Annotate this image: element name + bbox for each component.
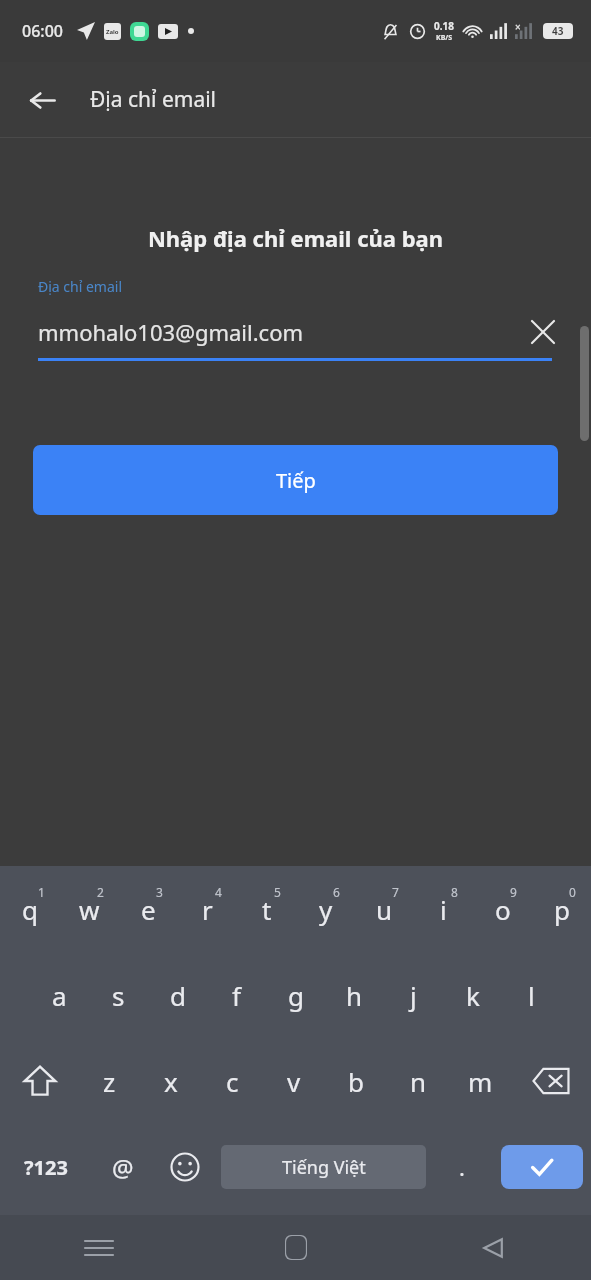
- staticText: 0.18: [434, 19, 454, 33]
- staticText: u: [376, 892, 393, 927]
- button[interactable]: Back: [18, 76, 66, 124]
- button[interactable]: 2: [60, 866, 119, 952]
- staticText: l: [528, 978, 535, 1013]
- button[interactable]: Back: [394, 1215, 591, 1280]
- staticText: m: [468, 1064, 493, 1099]
- button[interactable]: ?123: [0, 1124, 92, 1210]
- button[interactable]: n: [387, 1038, 449, 1124]
- button[interactable]: a: [30, 952, 89, 1038]
- staticText: 3: [156, 884, 163, 900]
- staticText: n: [410, 1064, 427, 1099]
- staticText: a: [52, 978, 67, 1013]
- staticText: Địa chỉ email: [90, 85, 217, 114]
- button[interactable]: 3: [119, 866, 178, 952]
- button[interactable]: Emoji: [154, 1124, 216, 1210]
- button[interactable]: f: [207, 952, 266, 1038]
- staticText: @: [112, 1151, 134, 1184]
- button[interactable]: Enter: [501, 1145, 583, 1189]
- staticText: h: [346, 978, 363, 1013]
- staticText: 0: [569, 884, 576, 900]
- staticText: 4: [215, 884, 222, 900]
- button[interactable]: Recent apps: [0, 1215, 197, 1280]
- button[interactable]: Shift: [0, 1038, 79, 1124]
- staticText: q: [22, 892, 38, 927]
- staticText: z: [103, 1064, 116, 1099]
- staticText: ?123: [24, 1154, 68, 1181]
- staticText: 2: [97, 884, 104, 900]
- button[interactable]: x: [140, 1038, 201, 1124]
- button[interactable]: Tiếng Việt: [221, 1145, 426, 1189]
- button[interactable]: 9: [473, 866, 532, 952]
- staticText: 7: [392, 884, 399, 900]
- staticText: w: [79, 892, 100, 927]
- staticText: f: [232, 978, 241, 1013]
- staticText: Tiếp: [276, 467, 316, 494]
- staticText: c: [226, 1064, 239, 1099]
- button[interactable]: Đăng ký bằng số di động: [165, 1228, 426, 1266]
- staticText: y: [319, 892, 333, 927]
- staticText: 1: [38, 884, 45, 900]
- button[interactable]: k: [443, 952, 502, 1038]
- staticText: 9: [510, 884, 517, 900]
- staticText: b: [348, 1064, 364, 1099]
- staticText: t: [262, 892, 272, 927]
- staticText: s: [112, 978, 125, 1013]
- staticText: KB/S: [436, 33, 453, 43]
- staticText: i: [440, 892, 447, 927]
- staticText: 6: [333, 884, 340, 900]
- button[interactable]: s: [89, 952, 148, 1038]
- staticText: ×: [515, 20, 521, 34]
- staticText: .: [459, 1152, 465, 1182]
- staticText: Địa chỉ email: [38, 277, 123, 296]
- staticText: Zalo: [106, 28, 119, 36]
- button[interactable]: 8: [414, 866, 473, 952]
- button[interactable]: Home: [197, 1215, 394, 1280]
- button[interactable]: c: [201, 1038, 263, 1124]
- button[interactable]: h: [325, 952, 384, 1038]
- button[interactable]: Tiếp: [33, 445, 558, 515]
- staticText: e: [141, 892, 156, 927]
- button[interactable]: l: [502, 952, 561, 1038]
- button[interactable]: v: [263, 1038, 325, 1124]
- button[interactable]: d: [148, 952, 207, 1038]
- staticText: mmohalo103@gmail.com: [38, 317, 304, 347]
- button[interactable]: Clear text: [523, 312, 563, 352]
- staticText: x: [164, 1064, 178, 1099]
- staticText: r: [202, 892, 213, 927]
- staticText: Đăng ký bằng số di động: [179, 1234, 412, 1260]
- button[interactable]: Delete: [511, 1038, 591, 1124]
- button[interactable]: .: [431, 1124, 493, 1210]
- staticText: Nhập địa chỉ email của bạn: [0, 223, 591, 253]
- staticText: v: [287, 1064, 301, 1099]
- staticText: g: [288, 978, 304, 1013]
- staticText: 5: [274, 884, 281, 900]
- button[interactable]: @: [92, 1124, 154, 1210]
- button[interactable]: z: [79, 1038, 140, 1124]
- staticText: p: [554, 892, 570, 927]
- button[interactable]: 4: [178, 866, 237, 952]
- staticText: k: [466, 978, 480, 1013]
- button[interactable]: j: [384, 952, 443, 1038]
- button[interactable]: b: [325, 1038, 387, 1124]
- button[interactable]: 5: [237, 866, 296, 952]
- staticText: 8: [451, 884, 458, 900]
- staticText: 06:00: [22, 20, 63, 42]
- button[interactable]: g: [266, 952, 325, 1038]
- staticText: o: [495, 892, 511, 927]
- staticText: j: [410, 978, 417, 1013]
- staticText: 43: [552, 24, 564, 38]
- button[interactable]: 6: [296, 866, 355, 952]
- staticText: d: [170, 978, 186, 1013]
- button[interactable]: 1: [0, 866, 60, 952]
- button[interactable]: 0: [532, 866, 591, 952]
- button[interactable]: m: [449, 1038, 511, 1124]
- button[interactable]: 7: [355, 866, 414, 952]
- staticText: Tiếng Việt: [282, 1155, 366, 1180]
